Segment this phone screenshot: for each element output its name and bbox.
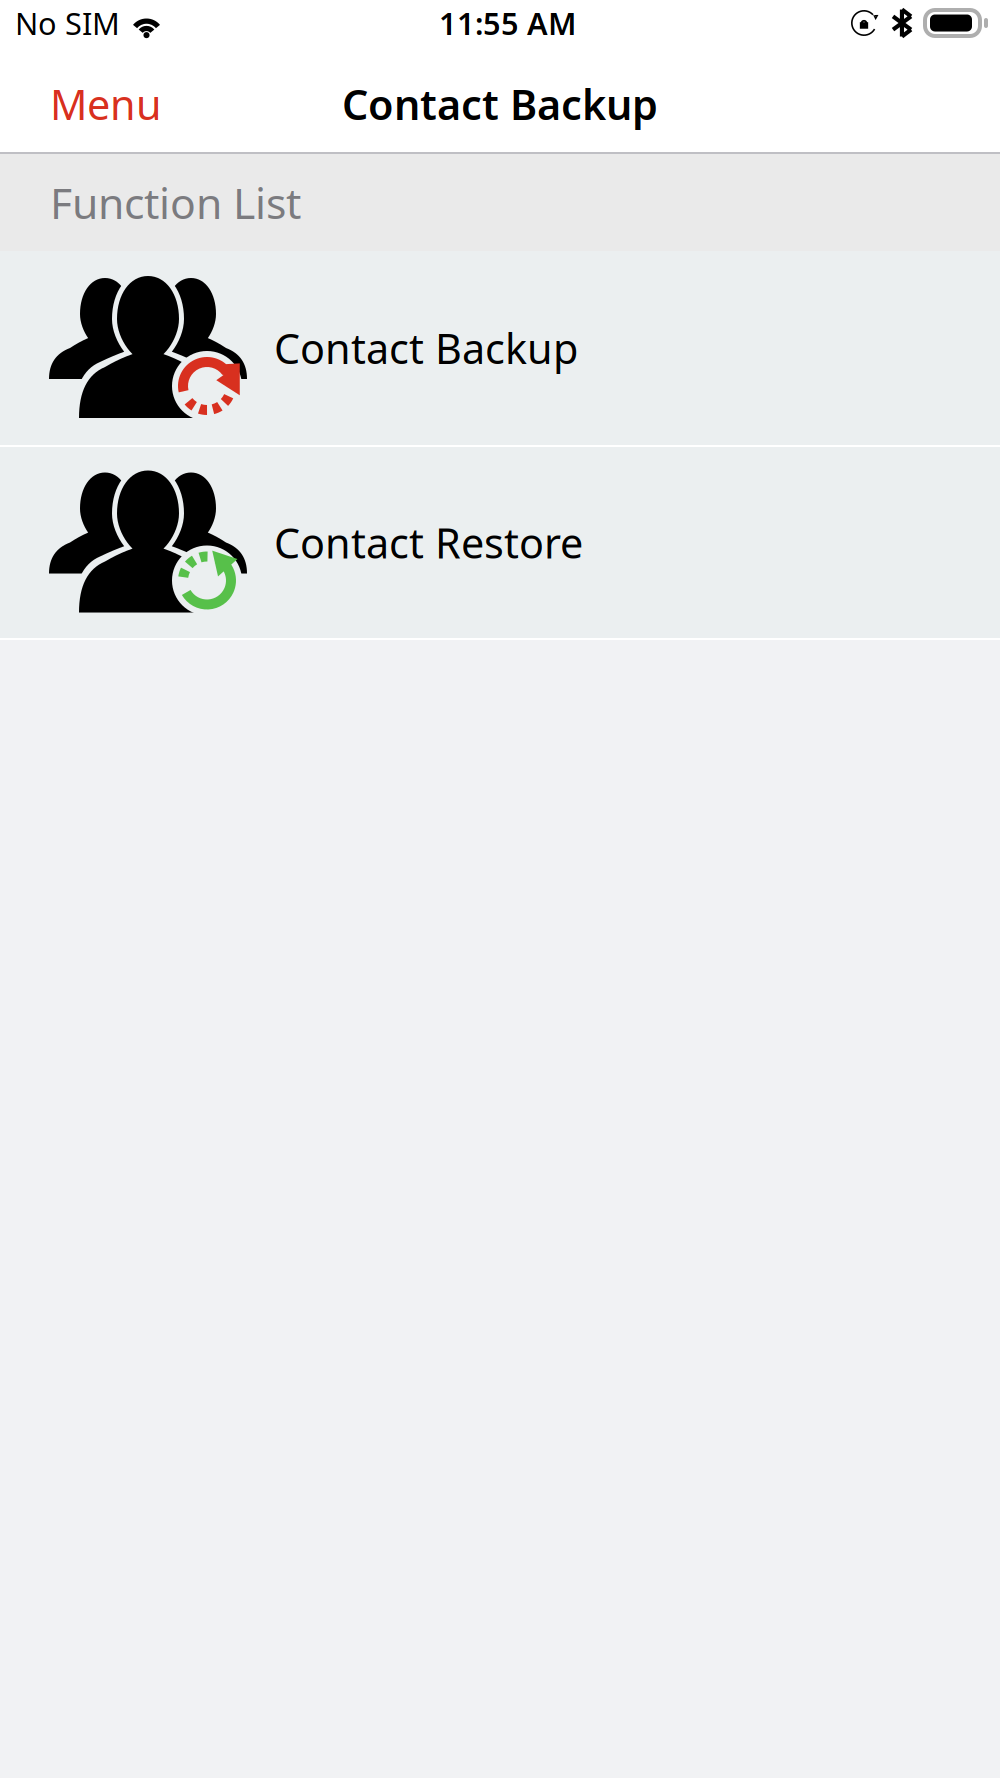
staticText: Menu [50,77,162,131]
staticText: Contact Backup [274,321,578,375]
staticText: Contact Backup [342,77,658,131]
button[interactable]: Menu [0,61,182,147]
staticText: Contact Restore [274,515,583,570]
button[interactable]: Contact Backup [0,251,1000,445]
staticText: No SIM [15,3,120,43]
staticText: 11:55 AM [439,3,576,43]
staticText: Function List [50,174,301,231]
button[interactable]: Contact Restore [0,447,1000,638]
